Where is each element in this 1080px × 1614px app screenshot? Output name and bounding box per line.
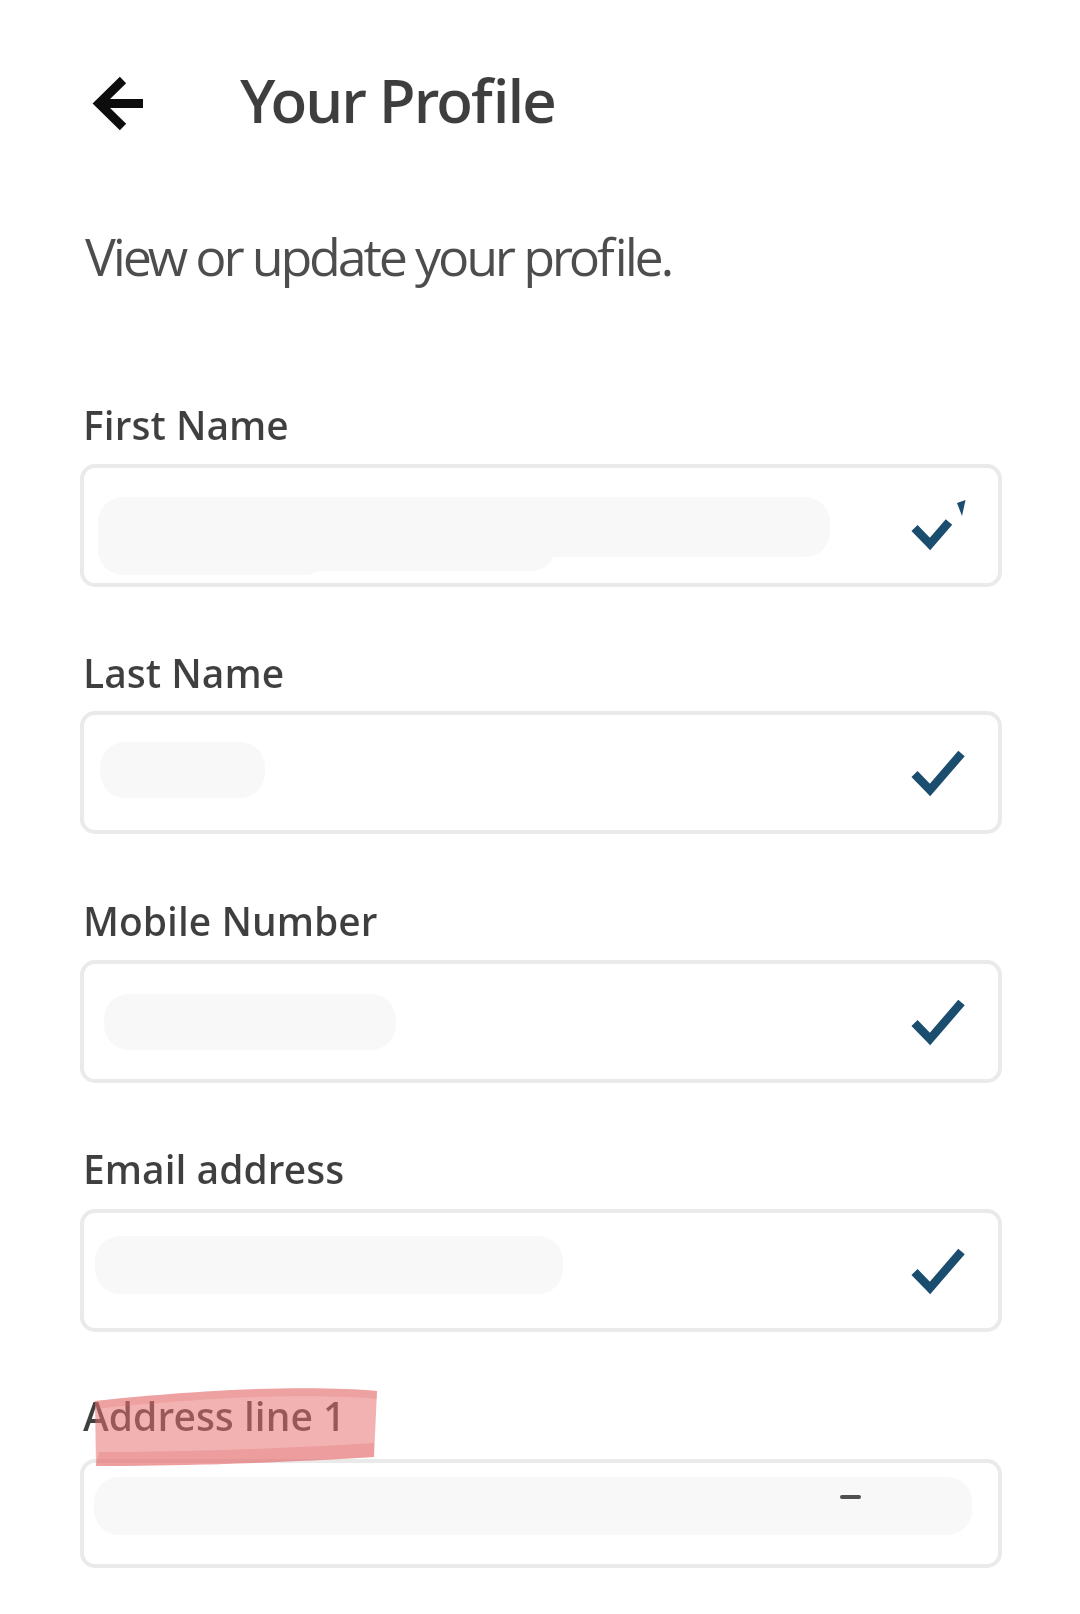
staticText: Your Profile: [240, 59, 555, 141]
button[interactable]: [80, 1459, 1002, 1568]
button[interactable]: [80, 960, 1002, 1083]
staticText: Address line 1: [83, 1389, 346, 1442]
button[interactable]: [90, 71, 154, 135]
staticText: Mobile Number: [83, 894, 378, 947]
staticText: View or update your profile.: [85, 220, 672, 291]
button[interactable]: [80, 464, 1002, 587]
button[interactable]: [80, 1209, 1002, 1332]
staticText: First Name: [83, 398, 289, 451]
staticText: Last Name: [83, 646, 285, 699]
button[interactable]: [80, 711, 1002, 834]
staticText: Email address: [83, 1142, 345, 1195]
